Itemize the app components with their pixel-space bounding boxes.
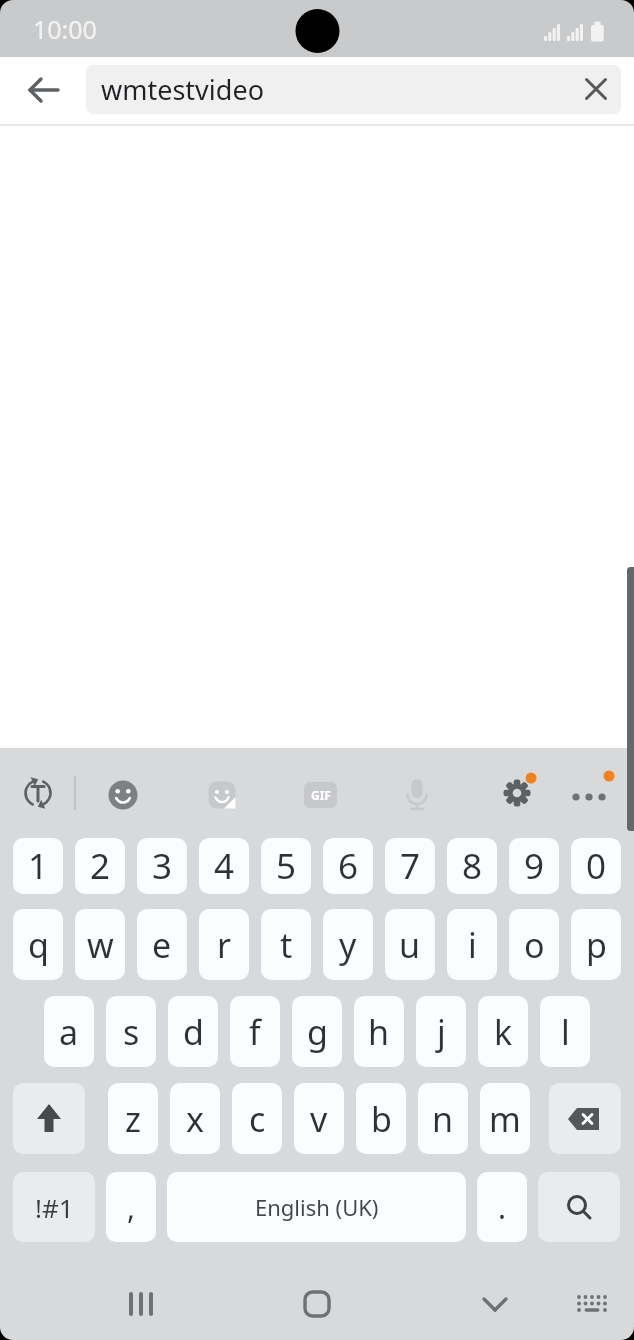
staticText: 4 — [214, 842, 235, 890]
button[interactable] — [549, 1083, 621, 1154]
button[interactable] — [13, 1083, 85, 1154]
staticText: b — [371, 1096, 392, 1142]
staticText: q — [28, 922, 49, 968]
button[interactable]: 2 — [75, 838, 125, 894]
button[interactable]: x — [170, 1083, 220, 1154]
button[interactable] — [471, 1280, 519, 1328]
staticText: , — [127, 1187, 136, 1228]
staticText: c — [249, 1096, 266, 1142]
staticText: v — [310, 1096, 328, 1142]
button[interactable] — [538, 1172, 620, 1242]
button[interactable]: 3 — [137, 838, 187, 894]
button[interactable]: English (UK) — [167, 1172, 466, 1242]
staticText: wmtestvideo — [101, 71, 264, 108]
button[interactable]: l — [540, 996, 590, 1067]
button[interactable]: . — [477, 1172, 527, 1242]
staticText: e — [152, 922, 172, 968]
button[interactable] — [20, 66, 68, 114]
button[interactable] — [393, 771, 441, 819]
staticText: 10:00 — [33, 12, 97, 46]
button[interactable]: 5 — [261, 838, 311, 894]
button[interactable]: a — [44, 996, 94, 1067]
button[interactable]: j — [416, 996, 466, 1067]
button[interactable]: o — [509, 909, 559, 980]
staticText: a — [59, 1009, 79, 1055]
button[interactable]: z — [108, 1083, 158, 1154]
button[interactable]: m — [480, 1083, 530, 1154]
button[interactable] — [14, 769, 62, 817]
staticText: i — [468, 922, 477, 968]
staticText: 7 — [400, 842, 421, 890]
button[interactable] — [99, 771, 147, 819]
staticText: n — [432, 1096, 454, 1142]
staticText: w — [87, 922, 114, 968]
staticText: f — [249, 1009, 261, 1055]
button[interactable] — [198, 771, 246, 819]
staticText: r — [217, 922, 232, 968]
staticText: m — [489, 1096, 521, 1142]
button[interactable]: y — [323, 909, 373, 980]
button[interactable]: e — [137, 909, 187, 980]
button[interactable]: u — [385, 909, 435, 980]
staticText: x — [186, 1096, 204, 1142]
button[interactable]: 1 — [13, 838, 63, 894]
staticText: s — [123, 1009, 140, 1055]
button[interactable]: GIF — [296, 771, 344, 819]
button[interactable]: !#1 — [13, 1172, 95, 1242]
button[interactable]: 8 — [447, 838, 497, 894]
staticText: y — [339, 922, 357, 968]
staticText: d — [183, 1009, 204, 1055]
button[interactable]: p — [571, 909, 621, 980]
staticText: 9 — [524, 842, 545, 890]
button[interactable]: 0 — [571, 838, 621, 894]
button[interactable]: q — [13, 909, 63, 980]
button[interactable] — [565, 771, 613, 819]
button[interactable]: d — [168, 996, 218, 1067]
staticText: 6 — [338, 842, 359, 890]
button[interactable]: 4 — [199, 838, 249, 894]
staticText: g — [307, 1009, 328, 1055]
staticText: !#1 — [35, 1190, 74, 1225]
button[interactable]: k — [478, 996, 528, 1067]
button[interactable]: t — [261, 909, 311, 980]
staticText: 8 — [462, 842, 483, 890]
staticText: t — [280, 922, 293, 968]
staticText: l — [561, 1009, 570, 1055]
button[interactable] — [117, 1280, 165, 1328]
button[interactable]: s — [106, 996, 156, 1067]
button[interactable] — [572, 66, 620, 114]
button[interactable]: 6 — [323, 838, 373, 894]
button[interactable]: , — [106, 1172, 156, 1242]
button[interactable]: 9 — [509, 838, 559, 894]
button[interactable]: g — [292, 996, 342, 1067]
staticText: English (UK) — [255, 1192, 379, 1222]
staticText: u — [399, 922, 421, 968]
button[interactable]: v — [294, 1083, 344, 1154]
button[interactable]: f — [230, 996, 280, 1067]
staticText: o — [524, 922, 545, 968]
button[interactable]: w — [75, 909, 125, 980]
button[interactable]: h — [354, 996, 404, 1067]
staticText: 2 — [90, 842, 111, 890]
button[interactable]: c — [232, 1083, 282, 1154]
button[interactable]: n — [418, 1083, 468, 1154]
staticText: z — [125, 1096, 141, 1142]
staticText: 1 — [28, 842, 49, 890]
button[interactable]: b — [356, 1083, 406, 1154]
button[interactable]: i — [447, 909, 497, 980]
staticText: p — [586, 922, 607, 968]
button[interactable]: r — [199, 909, 249, 980]
staticText: j — [437, 1009, 446, 1055]
staticText: k — [494, 1009, 513, 1055]
button[interactable] — [493, 769, 541, 817]
staticText: . — [498, 1187, 507, 1228]
button[interactable] — [293, 1280, 341, 1328]
staticText: h — [368, 1009, 390, 1055]
button[interactable] — [568, 1280, 616, 1328]
staticText: 5 — [276, 842, 297, 890]
staticText: 3 — [152, 842, 173, 890]
staticText: 0 — [586, 842, 607, 890]
staticText: GIF — [311, 787, 331, 803]
button[interactable]: 7 — [385, 838, 435, 894]
